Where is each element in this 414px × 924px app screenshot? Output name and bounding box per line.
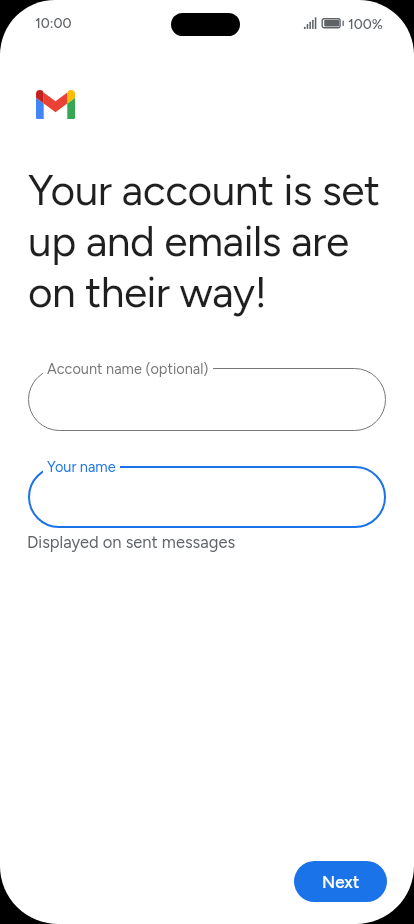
button[interactable] (28, 368, 386, 431)
staticText: Your account is set up and emails are on… (28, 165, 380, 318)
staticText: Your name (47, 458, 116, 475)
other: Battery full (321, 17, 344, 30)
button[interactable]: Next (294, 861, 387, 902)
button[interactable] (28, 466, 386, 528)
staticText: 10:00 (35, 15, 72, 32)
staticText: Displayed on sent messages (27, 532, 236, 552)
other: Gmail (36, 90, 75, 119)
staticText: 100% (348, 16, 383, 33)
other: Signal strength (304, 17, 317, 30)
staticText: Account name (optional) (47, 360, 209, 377)
staticText: Next (322, 872, 360, 892)
